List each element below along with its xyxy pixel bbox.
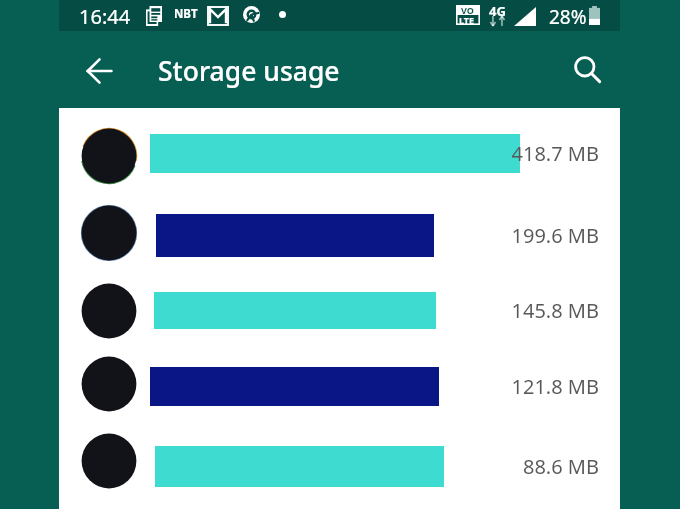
- button[interactable]: 88.6 MB: [59, 424, 620, 509]
- button[interactable]: 145.8 MB: [59, 272, 620, 347]
- button[interactable]: Search: [563, 45, 611, 93]
- staticText: LTE: [459, 14, 475, 26]
- button[interactable]: 121.8 MB: [59, 348, 620, 423]
- button[interactable]: 199.6 MB: [59, 195, 620, 271]
- staticText: Storage usage: [158, 53, 340, 89]
- staticText: 88.6 MB: [489, 453, 599, 480]
- button[interactable]: 418.7 MB: [59, 108, 620, 194]
- staticText: VO: [461, 4, 474, 16]
- staticText: 4G: [489, 2, 506, 20]
- staticText: 145.8 MB: [489, 297, 599, 324]
- staticText: 16:44: [79, 3, 131, 30]
- staticText: 28%: [549, 4, 587, 30]
- staticText: NBT: [174, 6, 198, 22]
- button[interactable]: Back: [75, 47, 123, 95]
- staticText: 418.7 MB: [489, 140, 599, 167]
- staticText: 199.6 MB: [489, 222, 599, 249]
- staticText: 121.8 MB: [489, 373, 599, 400]
